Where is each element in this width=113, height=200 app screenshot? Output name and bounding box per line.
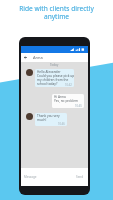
staticText: Today bbox=[50, 63, 59, 67]
button[interactable]: Hello Alexander Could you please pick up… bbox=[35, 69, 74, 87]
staticText: Hello Alexander Could you please pick up… bbox=[37, 70, 74, 86]
staticText: 10:46 bbox=[58, 122, 65, 126]
staticText: Send bbox=[76, 175, 84, 179]
staticText: Ride with clients directly anytime bbox=[6, 4, 107, 21]
button[interactable]: Send bbox=[75, 175, 85, 179]
button[interactable]: Thank you very much! bbox=[35, 113, 67, 126]
staticText: Thank you very much! bbox=[37, 114, 67, 122]
other: Back bbox=[24, 56, 27, 59]
staticText: 10:42 bbox=[65, 83, 72, 87]
button[interactable]: Back bbox=[21, 53, 88, 62]
button[interactable]: Hi Anna Yes, no problem bbox=[52, 94, 84, 108]
staticText: Message bbox=[24, 175, 37, 179]
staticText: Hi Anna Yes, no problem bbox=[54, 95, 79, 103]
staticText: 10:45 bbox=[75, 104, 82, 108]
staticText: Anna bbox=[33, 55, 43, 60]
button[interactable]: Message bbox=[24, 173, 75, 181]
